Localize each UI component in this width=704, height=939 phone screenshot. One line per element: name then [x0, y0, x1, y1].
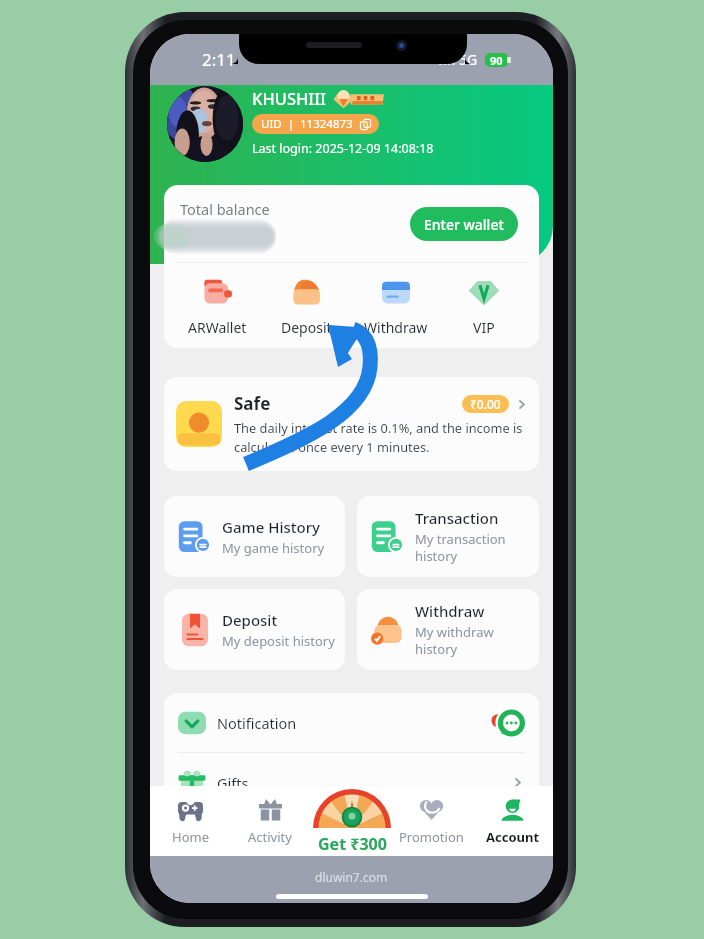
staticText: UID | 11324873	[261, 116, 353, 132]
button[interactable]: UID | 11324873	[252, 114, 379, 134]
staticText: dluwin7.com	[315, 869, 388, 885]
button[interactable]: Enter wallet	[410, 207, 518, 241]
button[interactable]: Safe	[164, 377, 539, 471]
button[interactable]: Account	[472, 786, 553, 856]
staticText: VIP	[473, 318, 495, 337]
staticText: 90	[490, 53, 503, 67]
button[interactable]: Deposit	[262, 269, 351, 343]
button[interactable]: Withdraw	[351, 269, 440, 343]
staticText: Get ₹300	[318, 833, 387, 855]
staticText: Total balance	[180, 199, 270, 219]
staticText: 2:11	[202, 48, 236, 71]
button[interactable]: VIP	[440, 269, 528, 343]
staticText: Transaction	[415, 508, 499, 528]
staticText: KHUSHIII	[252, 87, 326, 109]
button[interactable]: ARWallet	[173, 269, 262, 343]
button[interactable]: Transaction	[357, 496, 539, 577]
staticText: Withdraw	[364, 318, 428, 337]
staticText: Home	[172, 828, 209, 846]
staticText: Last login: 2025-12-09 14:08:18	[252, 140, 434, 157]
staticText: My game history	[222, 539, 325, 557]
button[interactable]: Withdraw	[357, 589, 539, 670]
staticText: ARWallet	[188, 318, 247, 337]
staticText: Account	[486, 828, 540, 846]
staticText: Withdraw	[415, 601, 485, 621]
button[interactable]: Home	[150, 786, 230, 856]
staticText: Enter wallet	[424, 215, 504, 234]
staticText: 5G	[459, 50, 478, 69]
staticText: My deposit history	[222, 632, 335, 650]
button[interactable]: Game History	[164, 496, 345, 577]
staticText: Gifts	[217, 773, 249, 793]
staticText: Deposit	[222, 610, 278, 630]
button[interactable]: Gifts	[164, 753, 539, 812]
staticText: Activity	[248, 828, 292, 846]
button[interactable]: Activity	[230, 786, 310, 856]
button[interactable]: Promotion	[391, 786, 472, 856]
staticText: ₹0.00	[470, 396, 501, 412]
staticText: Promotion	[399, 828, 464, 846]
staticText: Game History	[222, 517, 320, 537]
staticText: Notification	[217, 713, 297, 733]
button[interactable]: Deposit	[164, 589, 345, 670]
staticText: My transaction history	[415, 530, 506, 565]
staticText: Safe	[234, 392, 271, 415]
staticText: My withdraw history	[415, 623, 494, 658]
staticText: The daily interest rate is 0.1%, and the…	[234, 419, 523, 456]
button[interactable]: Notification	[164, 693, 539, 752]
staticText: Deposit	[281, 318, 332, 337]
button[interactable]: Get 300 spin wheel	[304, 774, 400, 864]
